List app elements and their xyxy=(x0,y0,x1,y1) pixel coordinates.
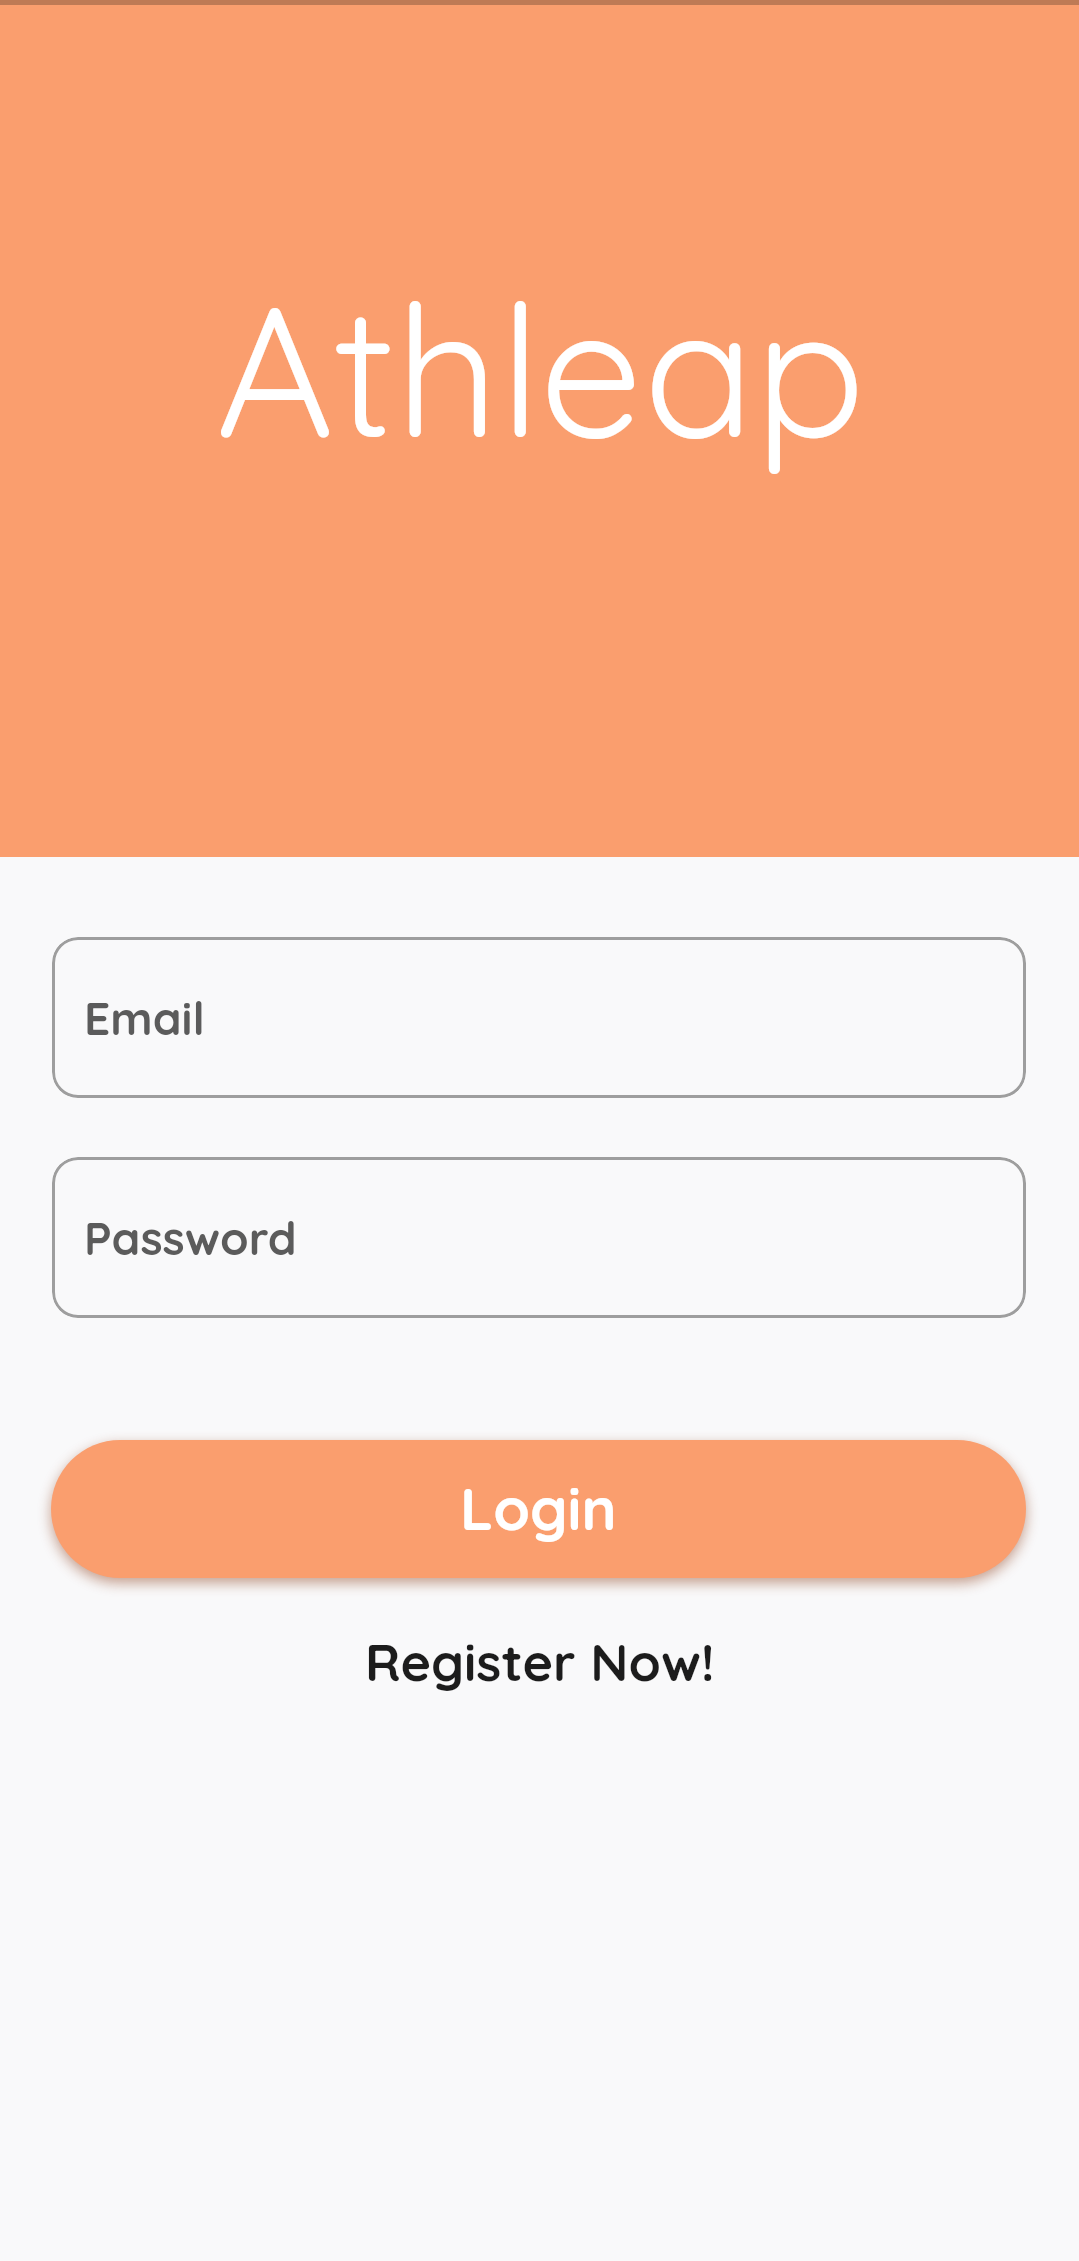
button[interactable]: Password xyxy=(52,1157,1026,1318)
staticText: Login xyxy=(460,1471,617,1545)
staticText: Register Now! xyxy=(365,1629,715,1694)
staticText: Athleap xyxy=(1,254,1079,483)
button[interactable]: Register Now! xyxy=(341,1621,739,1702)
button[interactable]: Login xyxy=(51,1440,1026,1578)
button[interactable]: Email xyxy=(52,937,1026,1098)
staticText: Email xyxy=(84,989,205,1047)
staticText: Password xyxy=(84,1209,297,1267)
